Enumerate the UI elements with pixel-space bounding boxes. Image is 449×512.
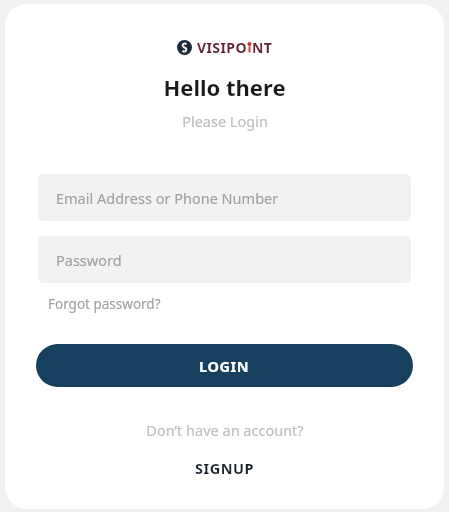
button[interactable]: LOGIN: [36, 344, 413, 387]
button[interactable]: Email Address or Phone Number: [38, 174, 411, 221]
staticText: SIGNUP: [195, 458, 254, 478]
staticText: Hello there: [163, 72, 286, 102]
staticText: Forgot password?: [48, 295, 161, 313]
button[interactable]: Forgot password?: [38, 292, 171, 316]
staticText: Please Login: [182, 111, 268, 131]
staticText: Password: [56, 250, 122, 270]
button[interactable]: SIGNUP: [183, 454, 266, 482]
staticText: Email Address or Phone Number: [56, 188, 279, 208]
staticText: LOGIN: [199, 356, 250, 376]
staticText: NT: [252, 38, 273, 57]
staticText: VISIPO: [197, 38, 247, 57]
button[interactable]: Password: [38, 236, 411, 283]
staticText: Don’t have an account?: [146, 420, 304, 440]
